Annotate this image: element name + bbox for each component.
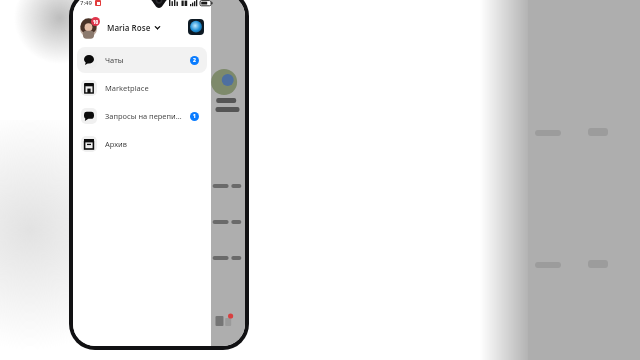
staticText: Marketplace	[105, 83, 203, 93]
button[interactable]: Profile	[80, 17, 100, 37]
button[interactable]: Чаты	[77, 47, 207, 73]
button[interactable]: Marketplace	[77, 75, 207, 101]
button[interactable]: Camera	[188, 19, 204, 35]
button[interactable]: Архив	[77, 131, 207, 157]
staticText: Архив	[105, 139, 203, 149]
staticText: Запросы на перепи…	[105, 111, 190, 121]
button[interactable]: Maria Rose	[107, 22, 161, 33]
staticText: Maria Rose	[107, 22, 151, 33]
staticText: 10	[93, 19, 99, 25]
button[interactable]: Запросы на перепи…	[77, 103, 207, 129]
staticText: 7:49	[80, 0, 92, 7]
staticText: 1	[193, 113, 196, 120]
staticText: 2	[193, 57, 196, 64]
staticText: Чаты	[105, 55, 190, 65]
